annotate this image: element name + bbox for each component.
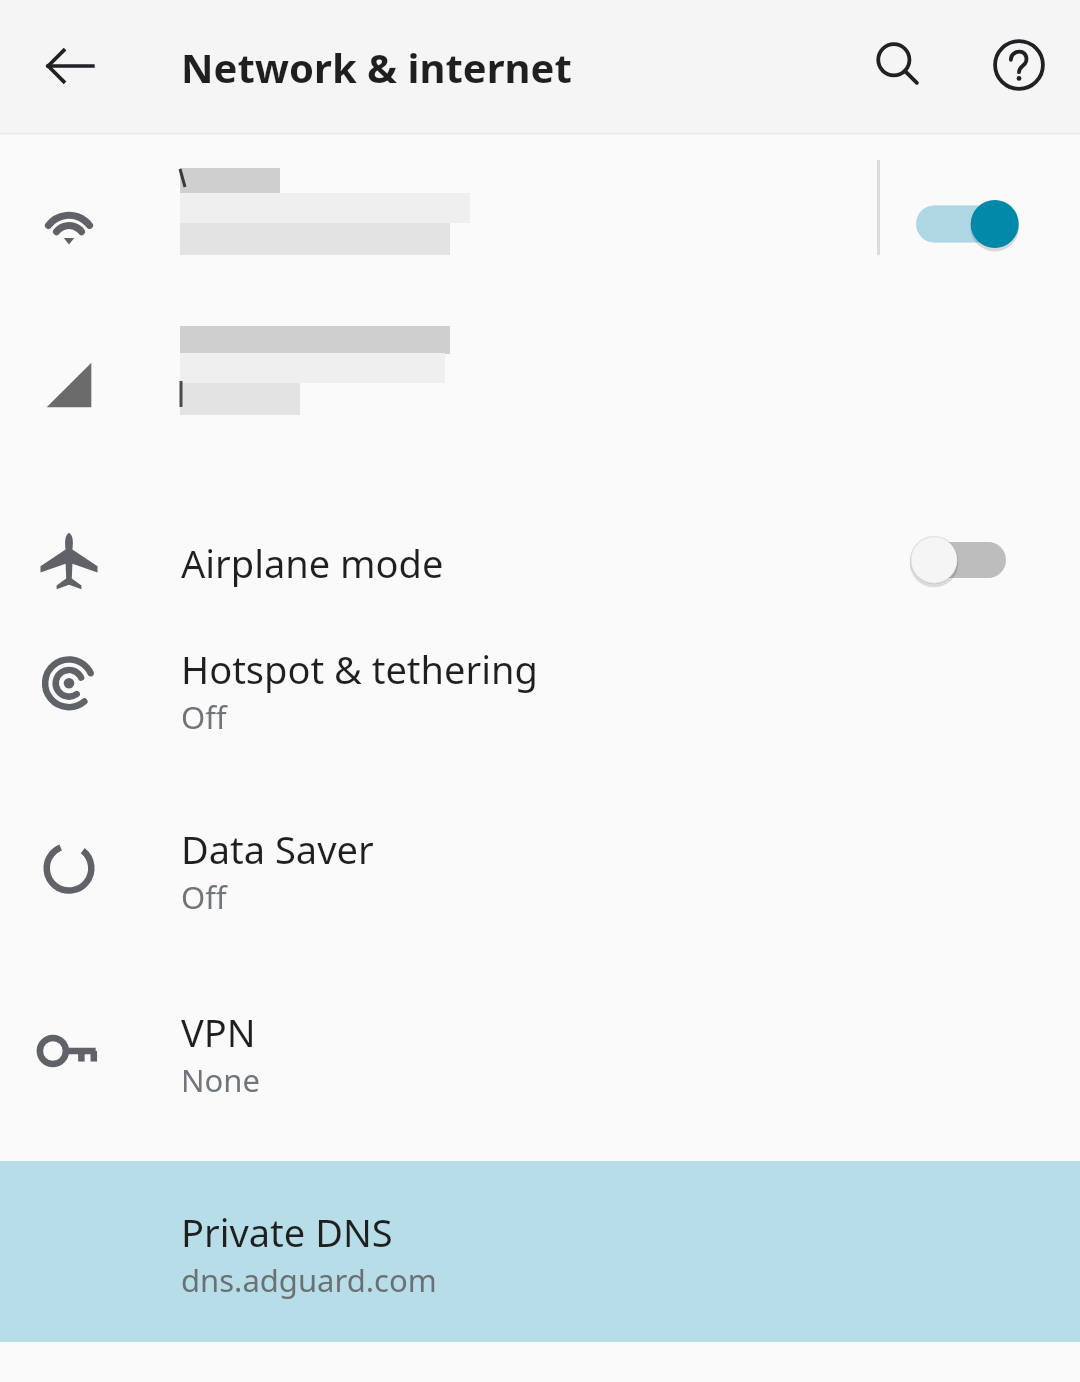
staticText: Off <box>181 876 227 918</box>
staticText: None <box>181 1059 260 1101</box>
button[interactable]: Data Saver <box>0 808 1080 989</box>
staticText: Network & internet <box>181 40 572 94</box>
staticText: Airplane mode <box>181 537 444 589</box>
button[interactable]: Search <box>852 19 944 111</box>
button[interactable] <box>0 313 1080 493</box>
button[interactable]: Airplane mode toggle <box>910 510 1050 610</box>
button[interactable]: Private DNS <box>0 1161 1080 1342</box>
button[interactable]: Hotspot & tethering <box>0 628 1080 808</box>
button[interactable]: Wi-Fi toggle <box>916 174 1052 274</box>
staticText: dns.adguard.com <box>181 1259 437 1301</box>
button[interactable]: VPN <box>0 989 1080 1161</box>
staticText: Hotspot & tethering <box>181 643 538 695</box>
staticText: Private DNS <box>181 1206 393 1258</box>
button[interactable]: Back <box>24 20 116 112</box>
button[interactable]: Airplane mode <box>0 493 1080 628</box>
staticText: Data Saver <box>181 823 374 875</box>
staticText: VPN <box>181 1006 256 1058</box>
staticText: Off <box>181 696 227 738</box>
button[interactable]: Help <box>973 19 1065 111</box>
button[interactable]: Wi-Fi toggle <box>0 135 1080 313</box>
